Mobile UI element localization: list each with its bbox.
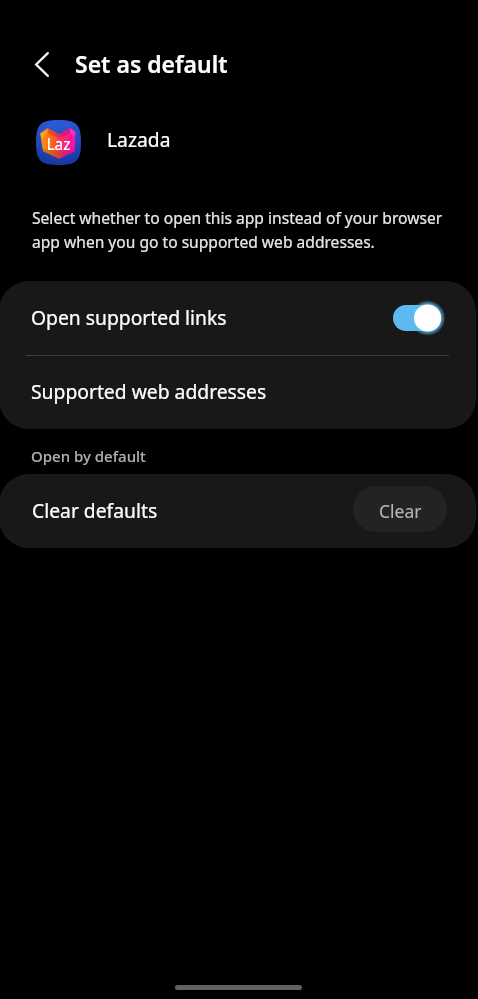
staticText: Open by default [31,446,146,466]
staticText: Clear [379,499,422,523]
staticText: Clear defaults [32,497,353,523]
button[interactable]: Navigate up [24,46,60,82]
staticText: Lazada [107,126,171,152]
staticText: Laz [46,133,71,154]
staticText: Set as default [75,48,228,79]
staticText: Open supported links [31,304,227,330]
button[interactable]: Clear [353,486,447,532]
staticText: Supported web addresses [31,378,267,404]
staticText: Select whether to open this app instead … [32,207,460,253]
button[interactable]: Open supported links toggle [393,301,441,335]
button[interactable]: Supported web addresses [0,355,476,429]
button[interactable]: Open supported links [0,281,476,355]
